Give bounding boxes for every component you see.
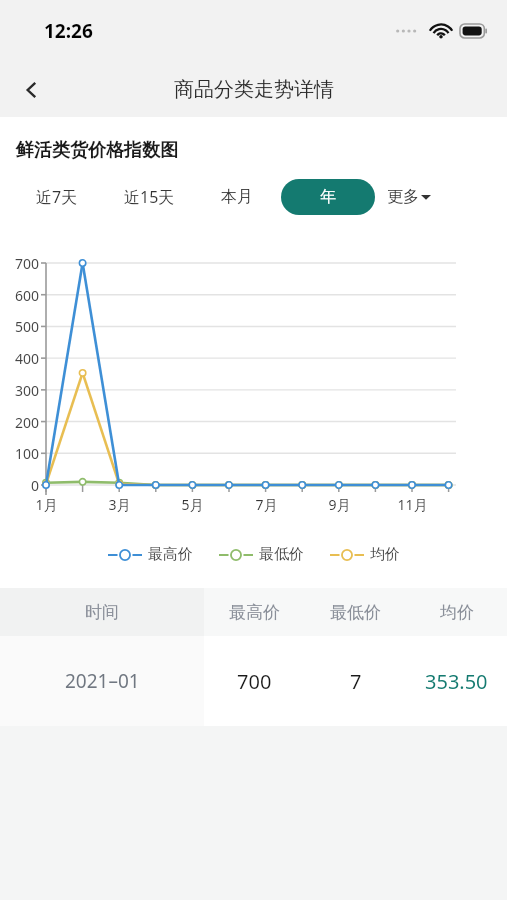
- staticText: 本月: [221, 187, 253, 207]
- staticText: 最高价: [148, 545, 193, 564]
- staticText: 5月: [181, 495, 204, 514]
- button[interactable]: 更多: [387, 187, 431, 207]
- staticText: 100: [15, 444, 40, 463]
- staticText: 3月: [108, 495, 131, 514]
- staticText: 600: [15, 286, 40, 305]
- staticText: 0: [31, 476, 40, 495]
- staticText: 500: [15, 317, 40, 336]
- button[interactable]: Back: [10, 68, 54, 112]
- staticText: 鲜活类货价格指数图: [16, 139, 178, 162]
- staticText: 商品分类走势详情: [174, 77, 334, 102]
- staticText: 7月: [255, 495, 278, 514]
- button[interactable]: 近15天: [124, 179, 175, 215]
- staticText: 353.50: [425, 668, 488, 695]
- staticText: 均价: [370, 545, 400, 564]
- staticText: 年: [320, 187, 336, 207]
- staticText: 2021–01: [65, 668, 140, 694]
- staticText: 时间: [85, 602, 119, 623]
- button[interactable]: 近7天: [36, 179, 78, 215]
- staticText: 1月: [35, 495, 58, 514]
- staticText: 最高价: [229, 602, 280, 623]
- staticText: 300: [15, 381, 40, 400]
- staticText: 12:26: [44, 18, 93, 44]
- staticText: 最低价: [330, 602, 381, 623]
- button[interactable]: 本月: [221, 179, 253, 215]
- button[interactable]: 700: [204, 636, 507, 726]
- staticText: 700: [15, 254, 40, 273]
- staticText: 近15天: [124, 186, 175, 208]
- staticText: 9月: [328, 495, 351, 514]
- staticText: 最低价: [259, 545, 304, 564]
- staticText: 200: [15, 413, 40, 432]
- button[interactable]: 2021–01: [0, 636, 204, 726]
- staticText: 近7天: [36, 186, 78, 208]
- staticText: 11月: [397, 495, 428, 514]
- staticText: 400: [15, 349, 40, 368]
- staticText: 700: [237, 668, 272, 695]
- button[interactable]: 年: [281, 179, 375, 215]
- staticText: 更多: [387, 187, 419, 207]
- staticText: 均价: [440, 602, 474, 623]
- staticText: 7: [350, 668, 362, 695]
